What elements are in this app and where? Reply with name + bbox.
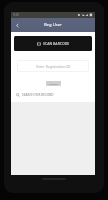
button[interactable]: SEARCH FOR RECORD [16,93,54,97]
button[interactable]: Back [12,20,22,30]
staticText: Enter Registration ID [36,64,71,69]
button[interactable]: SCAN BARCODE [14,36,92,51]
button[interactable]: SUBMIT [46,81,61,86]
staticText: SEARCH FOR RECORD [22,93,54,97]
staticText: Reg User [44,22,62,28]
button[interactable]: Enter Registration ID [17,60,89,72]
staticText: SCAN BARCODE [43,41,70,46]
staticText: 9:41 [13,13,20,17]
staticText: SUBMIT [49,82,59,85]
